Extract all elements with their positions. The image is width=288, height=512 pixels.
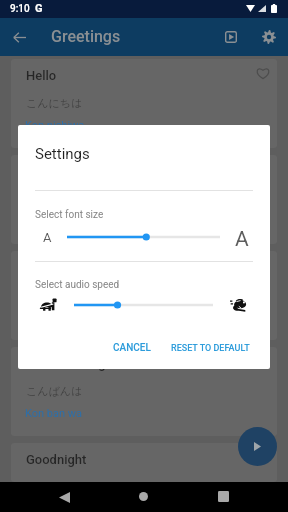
- staticText: Hello: [26, 68, 57, 83]
- staticText: RESET TO DEFAULT: [171, 343, 250, 354]
- button[interactable]: Goodnight: [11, 443, 277, 482]
- staticText: Select font size: [35, 209, 104, 221]
- button[interactable]: Good morning: [11, 155, 277, 244]
- staticText: CANCEL: [113, 342, 151, 354]
- staticText: Good evening: [26, 356, 106, 371]
- button[interactable]: Home: [129, 482, 157, 512]
- button[interactable]: Favourite: [249, 59, 277, 87]
- staticText: こんにちは: [26, 288, 83, 302]
- staticText: Good afternoon: [26, 260, 117, 275]
- button[interactable]: Favourite: [249, 443, 277, 471]
- staticText: A: [235, 227, 249, 249]
- staticText: Kon nichiwa: [25, 119, 85, 132]
- button[interactable]: Favourite: [249, 347, 277, 375]
- staticText: Goodnight: [26, 452, 87, 467]
- staticText: こんにちは: [26, 96, 83, 110]
- button[interactable]: Recents: [209, 482, 237, 512]
- button[interactable]: Good evening: [11, 347, 277, 436]
- staticText: Greetings: [51, 27, 121, 46]
- button[interactable]: RESET TO DEFAULT: [167, 335, 253, 361]
- button[interactable]: Good afternoon: [11, 251, 277, 340]
- staticText: G: [35, 2, 43, 15]
- button[interactable]: Hello: [11, 59, 277, 148]
- button[interactable]: Back: [0, 18, 38, 56]
- staticText: Select audio speed: [35, 279, 120, 291]
- button[interactable]: Favourite: [249, 251, 277, 279]
- staticText: Ohayou gozaimasu: [25, 215, 119, 228]
- button[interactable]: Slideshow: [212, 18, 250, 56]
- button[interactable]: Favourite: [249, 155, 277, 183]
- button[interactable]: Play: [238, 427, 277, 466]
- staticText: Settings: [35, 145, 90, 163]
- staticText: こんばんは: [26, 384, 83, 398]
- button[interactable]: Back: [50, 482, 78, 512]
- button[interactable]: CANCEL: [105, 335, 159, 361]
- staticText: A: [43, 230, 52, 245]
- button[interactable]: Settings: [250, 18, 288, 56]
- staticText: Kon ban wa: [25, 407, 83, 420]
- staticText: 9:10: [10, 3, 30, 15]
